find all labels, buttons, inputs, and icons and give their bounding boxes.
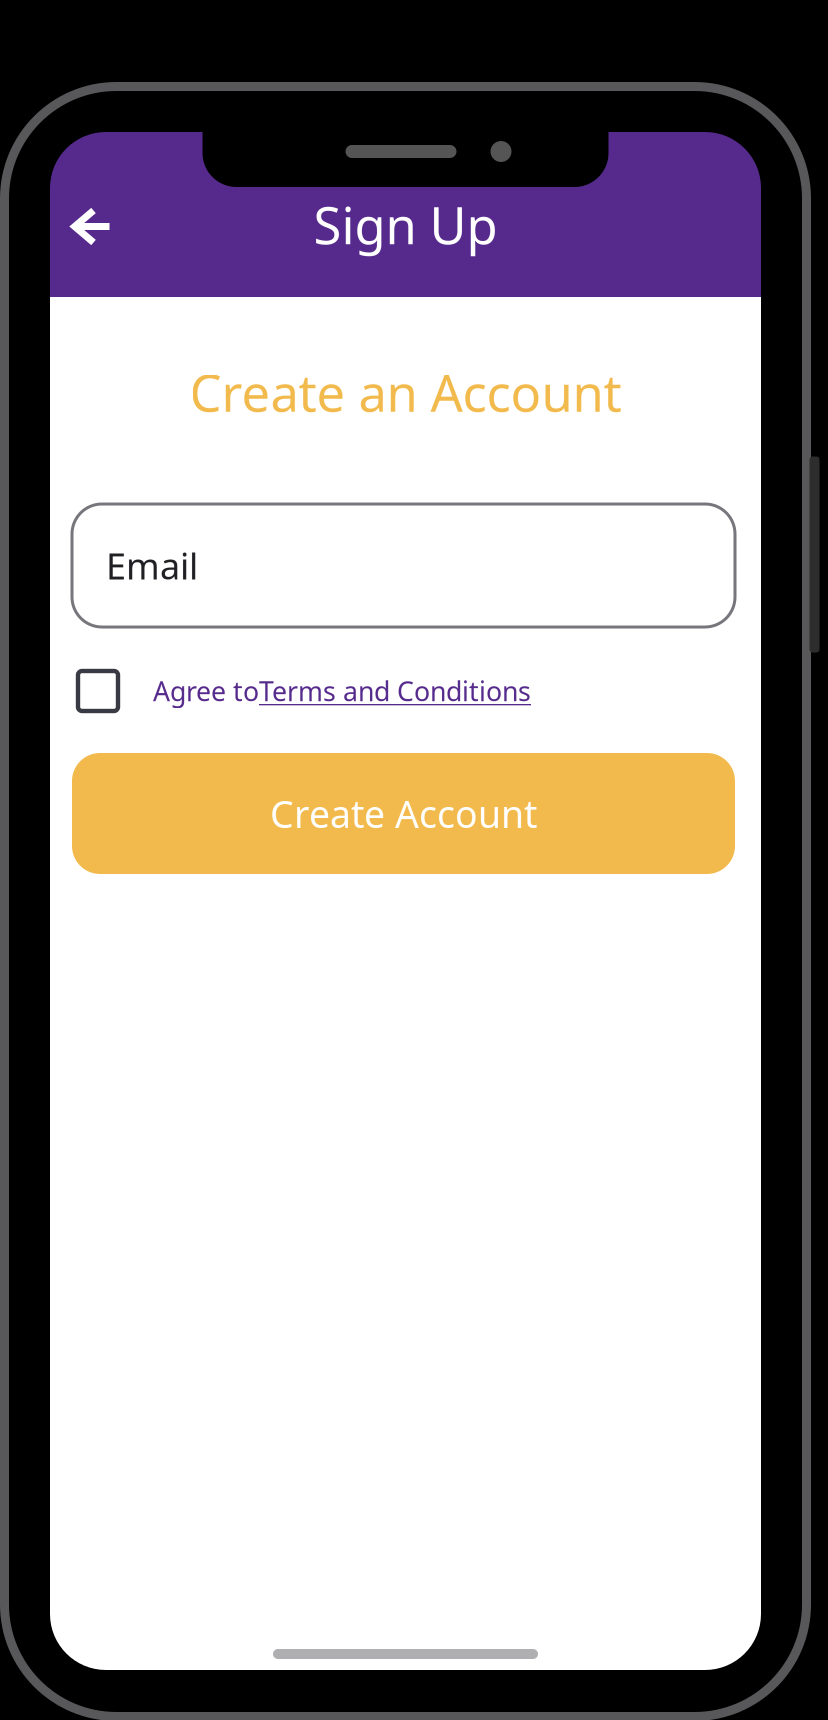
button[interactable]: Back: [58, 193, 124, 259]
button[interactable]: Email: [72, 504, 735, 627]
staticText: Terms and Conditions: [259, 673, 531, 709]
staticText: Agree to: [153, 673, 259, 709]
button[interactable]: Agree to Terms and Conditions: [76, 669, 120, 713]
staticText: Sign Up: [313, 191, 497, 258]
staticText: Create Account: [270, 789, 537, 838]
staticText: Email: [106, 542, 198, 589]
staticText: Create an Account: [189, 358, 621, 426]
button[interactable]: Terms and Conditions: [259, 673, 531, 709]
button[interactable]: Create Account: [72, 753, 735, 874]
